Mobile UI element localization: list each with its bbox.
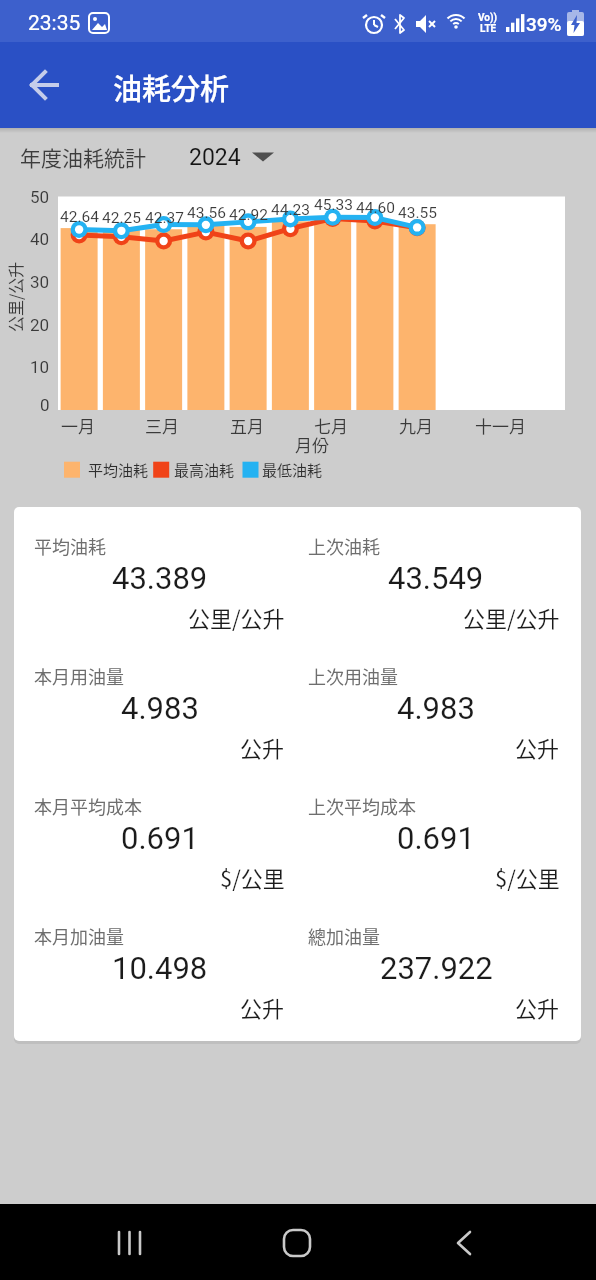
staticText: 本月加油量	[34, 923, 124, 949]
staticText: 43.56	[187, 204, 226, 222]
button[interactable]: 2024	[183, 138, 283, 176]
staticText: 42.25	[102, 209, 141, 227]
staticText: 39%	[526, 13, 562, 35]
staticText: 九月	[399, 413, 433, 438]
staticText: 公升	[240, 991, 285, 1023]
staticText: 44.60	[356, 199, 395, 217]
staticText: 最低油耗	[262, 459, 323, 481]
staticText: 0.691	[397, 820, 475, 856]
staticText: 20	[30, 315, 50, 335]
staticText: 上次平均成本	[308, 793, 416, 819]
button[interactable]	[267, 1212, 327, 1272]
staticText: 總加油量	[308, 923, 380, 949]
staticText: 2024	[189, 144, 241, 171]
staticText: 4.983	[121, 690, 199, 726]
staticText: 237.922	[380, 950, 493, 986]
staticText: 40	[30, 229, 50, 249]
staticText: 23:35	[28, 11, 81, 36]
staticText: 十一月	[475, 413, 526, 438]
staticText: 年度油耗統計	[20, 142, 146, 172]
staticText: Vo))	[478, 12, 498, 24]
staticText: 最高油耗	[174, 459, 235, 481]
staticText: 本月平均成本	[34, 793, 142, 819]
staticText: 月份	[295, 432, 329, 457]
staticText: 平均油耗	[34, 533, 106, 559]
staticText: 公升	[515, 991, 560, 1023]
staticText: 45.33	[314, 196, 353, 214]
staticText: 42.37	[145, 209, 184, 227]
staticText: 43.389	[112, 560, 208, 596]
staticText: 42.92	[229, 206, 268, 224]
button[interactable]	[433, 1212, 493, 1272]
staticText: 10	[30, 357, 50, 377]
staticText: 公里/公升	[188, 601, 285, 633]
staticText: 公升	[240, 731, 285, 763]
staticText: 本月用油量	[34, 663, 124, 689]
staticText: $/公里	[495, 861, 560, 893]
button[interactable]	[16, 58, 70, 112]
staticText: LTE	[480, 23, 497, 35]
staticText: 43.549	[388, 560, 484, 596]
staticText: 七月	[314, 413, 348, 438]
staticText: 50	[30, 187, 50, 207]
staticText: $/公里	[220, 861, 285, 893]
staticText: 44.23	[271, 201, 310, 219]
staticText: 10.498	[112, 950, 208, 986]
staticText: 4.983	[397, 690, 475, 726]
staticText: 公里/公升	[463, 601, 560, 633]
staticText: 油耗分析	[113, 66, 230, 106]
staticText: 0.691	[121, 820, 199, 856]
staticText: 30	[30, 272, 50, 292]
staticText: 五月	[230, 413, 264, 438]
staticText: 平均油耗	[88, 459, 149, 481]
staticText: 上次用油量	[308, 663, 398, 689]
staticText: 43.55	[398, 204, 437, 222]
staticText: 公升	[515, 731, 560, 763]
staticText: 一月	[61, 413, 95, 438]
staticText: 三月	[145, 413, 179, 438]
staticText: 公里/公升	[3, 261, 26, 332]
staticText: 0	[40, 395, 50, 415]
staticText: 42.64	[60, 208, 99, 226]
button[interactable]	[100, 1212, 160, 1272]
staticText: 上次油耗	[308, 533, 380, 559]
